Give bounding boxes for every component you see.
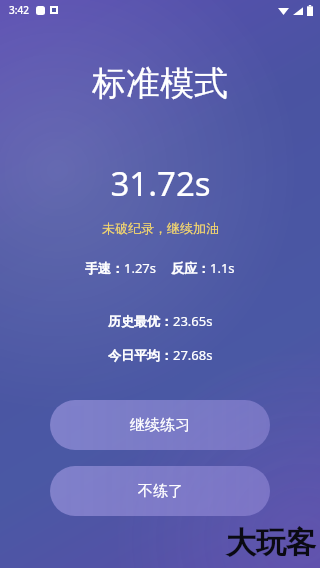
staticText: 3:42: [9, 3, 29, 17]
staticText: 1.27s: [124, 259, 157, 277]
staticText: 历史最优：: [108, 313, 173, 329]
staticText: 不练了: [138, 482, 183, 501]
staticText: 大玩客: [226, 524, 316, 562]
staticText: 31.72s: [110, 161, 211, 206]
staticText: 1.1s: [210, 259, 235, 277]
button[interactable]: 继续练习: [50, 400, 270, 450]
staticText: 反应：: [171, 260, 210, 276]
staticText: 手速：: [85, 260, 124, 276]
button[interactable]: 不练了: [50, 466, 270, 516]
staticText: 27.68s: [173, 346, 213, 364]
staticText: 未破纪录，继续加油: [102, 220, 219, 236]
staticText: 23.65s: [173, 312, 213, 330]
staticText: 今日平均：: [108, 347, 173, 363]
staticText: 标准模式: [92, 62, 228, 105]
staticText: 继续练习: [130, 416, 190, 435]
